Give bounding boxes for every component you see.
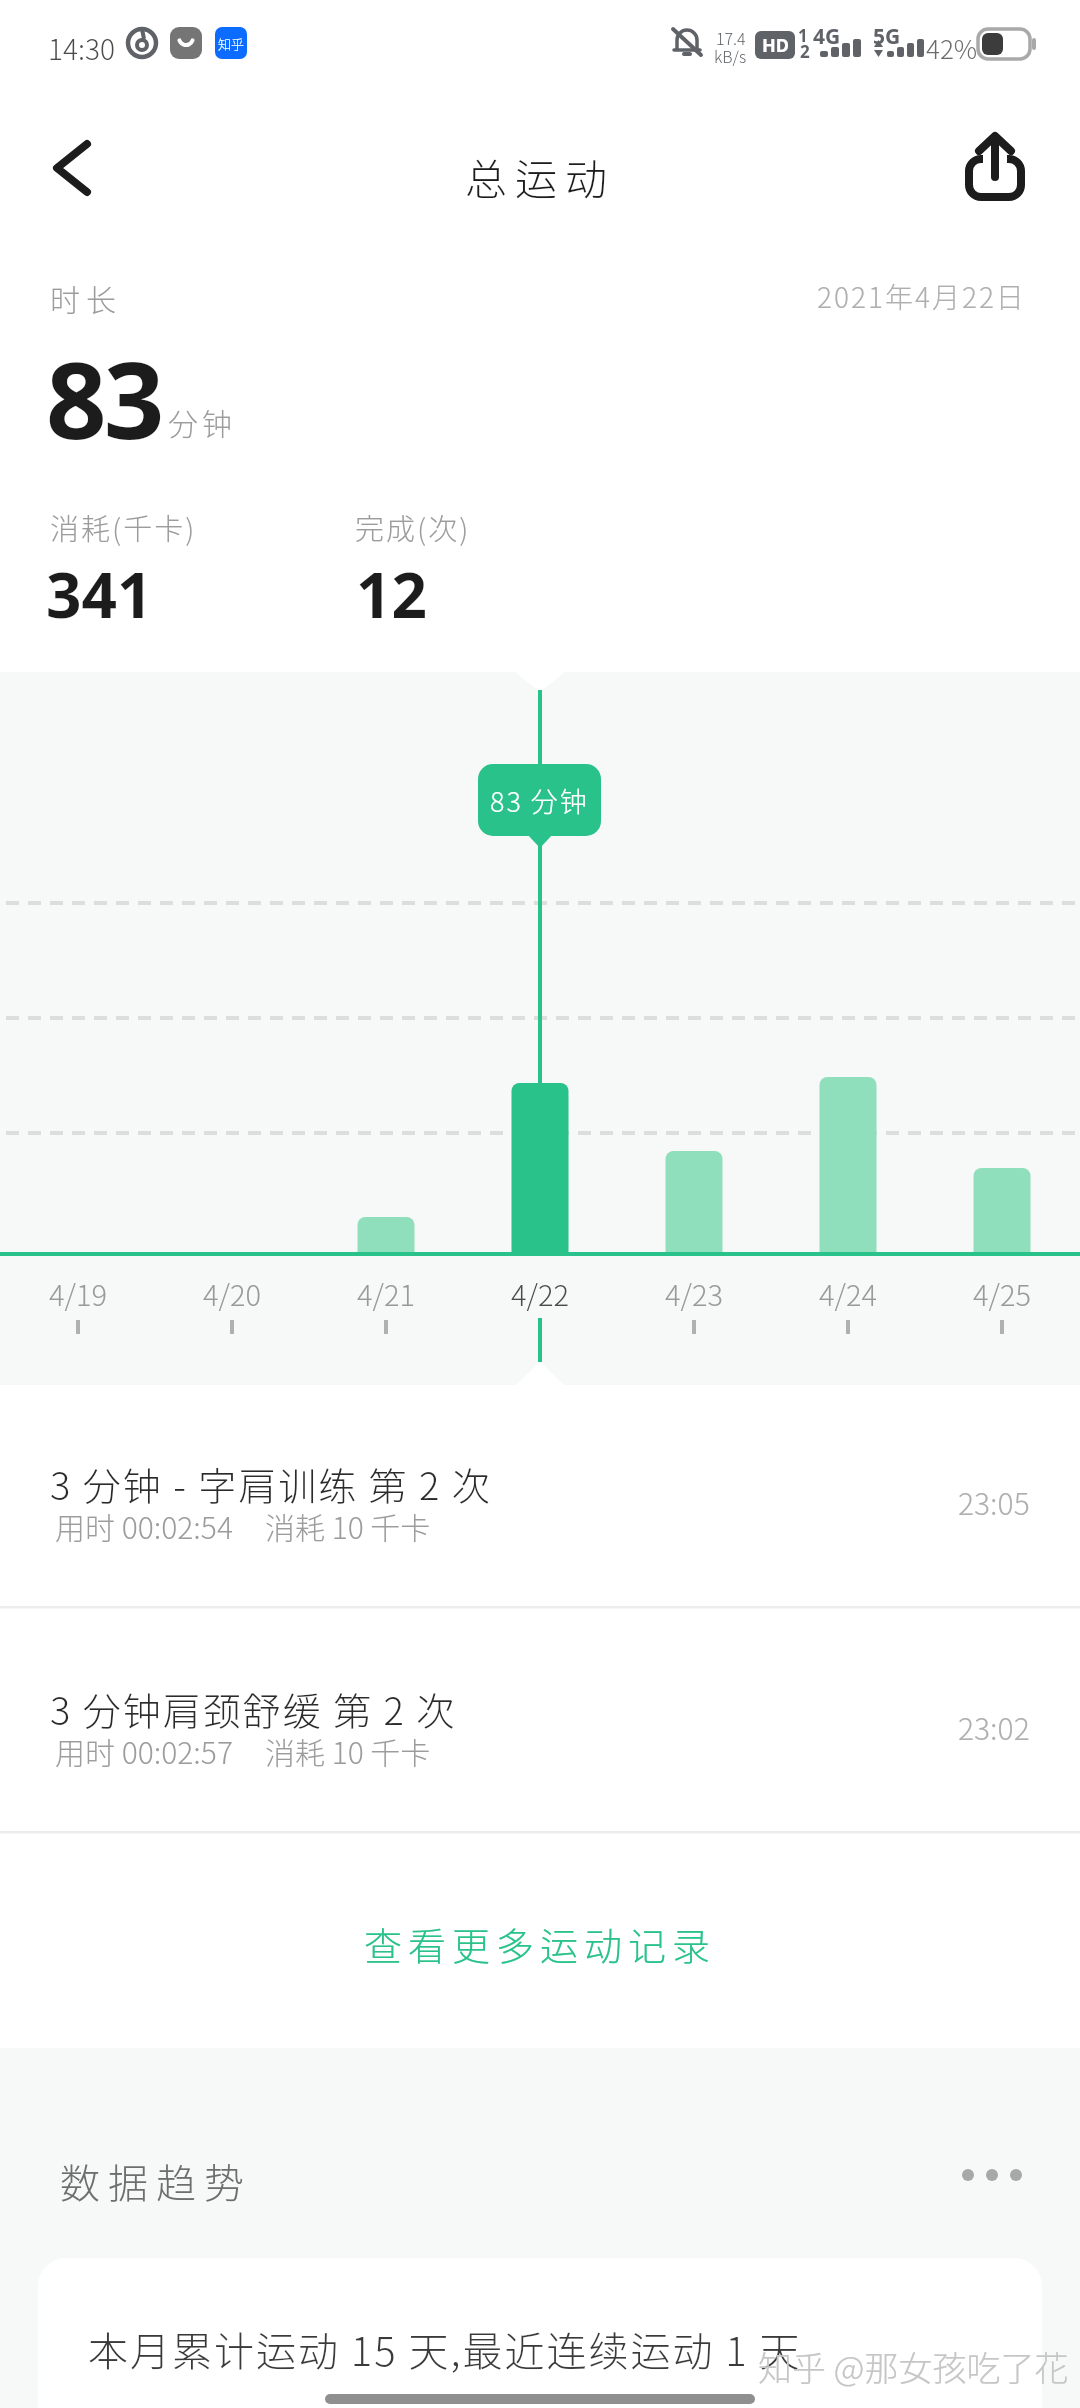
staticText: 4/21: [357, 1272, 415, 1314]
staticText: 4/20: [203, 1272, 261, 1314]
staticText: 4/24: [819, 1272, 877, 1314]
staticText: 2: [800, 40, 810, 63]
staticText: 14:30: [48, 28, 115, 69]
staticText: 23:05: [958, 1480, 1030, 1523]
staticText: 4/23: [665, 1272, 723, 1314]
button[interactable]: 查看更多运动记录: [290, 1900, 790, 1986]
staticText: 4G: [813, 22, 841, 51]
staticText: 3 分钟肩颈舒缓 第 2 次: [50, 1681, 457, 1736]
staticText: 42%: [926, 29, 978, 67]
staticText: 本月累计运动 15 天,最近连续运动 1 天: [88, 2320, 802, 2378]
staticText: 12: [356, 552, 427, 636]
staticText: 分钟: [168, 400, 236, 443]
staticText: 消耗 10 千卡: [265, 1504, 431, 1547]
staticText: 2021年4月22日: [817, 276, 1026, 317]
staticText: 1: [798, 24, 808, 47]
button[interactable]: 3 分钟 - 字肩训练 第 2 次: [0, 1400, 1080, 1606]
button[interactable]: [33, 128, 113, 208]
staticText: 23:02: [958, 1705, 1030, 1748]
staticText: 5G: [873, 22, 901, 51]
staticText: 知乎: [218, 34, 245, 53]
staticText: 完成(次): [355, 506, 471, 548]
staticText: 知乎 @那女孩吃了花: [758, 2342, 1069, 2391]
staticText: 83 分钟: [490, 781, 589, 820]
staticText: 用时 00:02:54: [55, 1504, 233, 1547]
staticText: 4/25: [973, 1272, 1031, 1314]
staticText: 查看更多运动记录: [364, 1916, 717, 1971]
staticText: 消耗 10 千卡: [265, 1729, 431, 1772]
button[interactable]: 本月累计运动 15 天,最近连续运动 1 天: [38, 2258, 1042, 2408]
staticText: 消耗(千卡): [50, 506, 197, 548]
button[interactable]: 3 分钟肩颈舒缓 第 2 次: [0, 1608, 1080, 1831]
staticText: 数据趋势: [60, 2152, 252, 2210]
staticText: 17.4: [716, 26, 746, 49]
staticText: 用时 00:02:57: [55, 1729, 233, 1772]
staticText: 4/19: [49, 1272, 107, 1314]
staticText: 341: [46, 552, 153, 636]
staticText: HD: [762, 33, 789, 58]
button[interactable]: [940, 111, 1050, 221]
button[interactable]: [930, 2130, 1040, 2220]
staticText: 83: [46, 326, 162, 470]
staticText: 3 分钟 - 字肩训练 第 2 次: [50, 1456, 492, 1511]
staticText: 4/22: [511, 1272, 569, 1314]
staticText: kB/s: [714, 44, 747, 67]
staticText: 时长: [50, 276, 122, 319]
staticText: 总运动: [465, 146, 616, 207]
